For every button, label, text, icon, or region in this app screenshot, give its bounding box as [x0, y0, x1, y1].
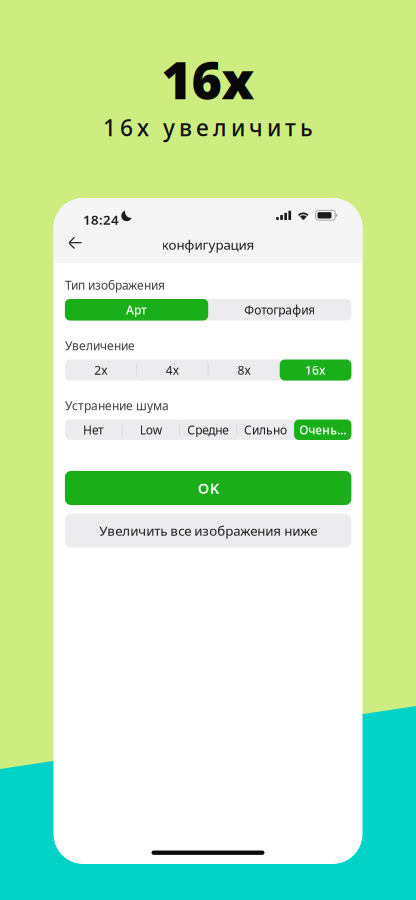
button[interactable]: Средне [179, 419, 237, 440]
staticText: Фотография [244, 302, 315, 318]
button[interactable]: Увеличить все изображения ниже [65, 513, 351, 547]
button[interactable]: Сильно [237, 419, 294, 440]
button[interactable]: 4x [136, 359, 208, 380]
staticText: Очень... [299, 422, 346, 438]
button[interactable]: Back [60, 228, 90, 257]
button[interactable]: 16x [280, 359, 351, 380]
staticText: Увеличение [65, 337, 135, 353]
staticText: Увеличить все изображения ниже [99, 522, 317, 539]
staticText: 16x [305, 362, 326, 378]
staticText: Средне [187, 422, 229, 438]
staticText: Low [140, 422, 162, 438]
staticText: Сильно [244, 422, 287, 438]
staticText: ь [300, 112, 313, 142]
staticText: и [231, 112, 245, 142]
staticText: ч [249, 112, 263, 142]
staticText: 1 [103, 112, 116, 142]
staticText: Устранение шума [65, 397, 169, 413]
staticText: конфигурация [161, 236, 254, 253]
staticText: Тип изображения [65, 277, 165, 293]
staticText: Нет [83, 422, 104, 438]
staticText: 8x [237, 362, 250, 378]
button[interactable]: Очень... [294, 419, 351, 440]
staticText: и [267, 112, 281, 142]
staticText: 6 [120, 112, 133, 142]
staticText: 2x [94, 362, 107, 378]
button[interactable]: Фотография [208, 299, 351, 320]
staticText: е [196, 112, 209, 142]
staticText: 16x [161, 44, 254, 114]
staticText: 18:24 [83, 211, 119, 228]
staticText: OK [198, 478, 219, 498]
button[interactable]: 8x [208, 359, 280, 380]
staticText: л [213, 112, 227, 142]
staticText: в [179, 112, 192, 142]
button[interactable]: OK [65, 471, 351, 505]
button[interactable]: Low [122, 419, 179, 440]
staticText: Арт [126, 302, 147, 318]
staticText: т [285, 112, 296, 142]
staticText: у [163, 112, 175, 142]
button[interactable]: Нет [65, 419, 122, 440]
button[interactable]: Арт [65, 299, 208, 320]
button[interactable]: 2x [65, 359, 136, 380]
staticText: 4x [166, 362, 179, 378]
staticText: х [137, 112, 149, 142]
